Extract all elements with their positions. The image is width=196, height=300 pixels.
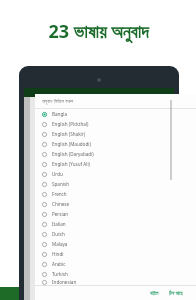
button[interactable]: বাতিল (147, 289, 162, 298)
staticText: Persian (52, 211, 69, 217)
staticText: Dutch (52, 231, 65, 237)
staticText: Italian (52, 221, 66, 227)
button[interactable]: French (35, 189, 196, 199)
button[interactable]: Malaya (35, 239, 196, 249)
staticText: বাতিল (150, 291, 159, 296)
staticText: Bangla (52, 111, 67, 117)
staticText: Hindi (52, 251, 64, 257)
button[interactable]: English (Pickthal) (35, 119, 196, 129)
staticText: Urdu (52, 171, 63, 177)
staticText: Turkish (52, 271, 68, 277)
button[interactable]: Arabic (35, 259, 196, 269)
button[interactable]: Turkish (35, 269, 196, 279)
button[interactable]: English (Shakir) (35, 129, 196, 139)
staticText: Arabic (52, 261, 66, 267)
button[interactable]: Spanish (35, 179, 196, 189)
staticText: French (52, 191, 67, 197)
button[interactable]: Italian (35, 219, 196, 229)
button[interactable]: English (Daryabadi) (35, 149, 196, 159)
button[interactable]: English (Yusuf Ali) (35, 159, 196, 169)
staticText: ঠিক আছে (169, 290, 183, 296)
staticText: English (Shakir) (52, 131, 86, 137)
button[interactable]: Indonesian (35, 279, 196, 285)
staticText: অনুবাদ নির্বাচন করুন (42, 98, 74, 105)
staticText: English (Daryabadi) (52, 151, 94, 157)
button[interactable]: ঠিক আছে (166, 288, 186, 298)
staticText: English (Maudodi) (52, 141, 91, 147)
staticText: Malaya (52, 241, 68, 247)
staticText: Spanish (52, 181, 69, 187)
staticText: Indonesian (52, 279, 77, 285)
button[interactable]: Chinese (35, 199, 196, 209)
staticText: English (Pickthal) (52, 121, 89, 127)
staticText: 23 ভাষায় অনুবাদ (48, 19, 149, 44)
button[interactable]: Bangla (35, 109, 196, 119)
button[interactable]: Hindi (35, 249, 196, 259)
button[interactable]: Urdu (35, 169, 196, 179)
staticText: English (Yusuf Ali) (52, 161, 91, 167)
staticText: Chinese (52, 201, 70, 207)
button[interactable]: Persian (35, 209, 196, 219)
button[interactable]: Dutch (35, 229, 196, 239)
button[interactable]: English (Maudodi) (35, 139, 196, 149)
